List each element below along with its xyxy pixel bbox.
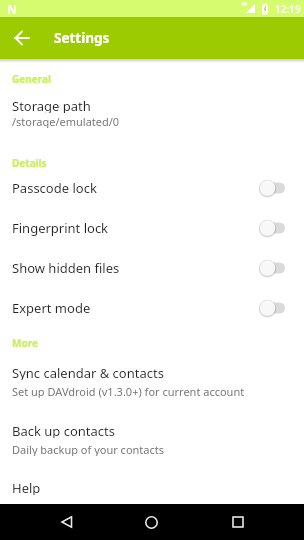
button[interactable]: Sync calendar & contacts xyxy=(0,364,304,398)
button[interactable]: Help xyxy=(0,479,304,495)
staticText: N xyxy=(7,1,17,17)
button[interactable]: Storage path xyxy=(0,97,304,128)
staticText: Fingerprint lock xyxy=(12,219,109,237)
button[interactable]: Back up contacts xyxy=(0,422,304,456)
button[interactable] xyxy=(203,504,304,540)
staticText: Help xyxy=(12,479,41,495)
button[interactable] xyxy=(0,17,44,59)
button[interactable]: Passcode lock xyxy=(0,168,304,208)
staticText: General xyxy=(12,72,51,84)
button[interactable] xyxy=(102,504,203,540)
staticText: Sync calendar & contacts xyxy=(12,364,164,380)
staticText: Storage path xyxy=(12,97,91,113)
staticText: Set up DAVdroid (v1.3.0+) for current ac… xyxy=(12,384,245,398)
staticText: /storage/emulated/0 xyxy=(12,114,120,128)
staticText: Daily backup of your contacts xyxy=(12,442,165,456)
button[interactable]: Show hidden files xyxy=(0,248,304,288)
staticText: Expert mode xyxy=(12,299,91,317)
staticText: Settings xyxy=(54,29,110,47)
staticText: More xyxy=(12,336,38,348)
staticText: 12:19 xyxy=(275,2,301,16)
button[interactable]: Expert mode xyxy=(0,288,304,328)
staticText: Passcode lock xyxy=(12,179,97,197)
staticText: Details xyxy=(12,156,47,168)
staticText: Show hidden files xyxy=(12,259,120,277)
button[interactable] xyxy=(0,504,102,540)
button[interactable]: Fingerprint lock xyxy=(0,208,304,248)
staticText: Back up contacts xyxy=(12,422,115,438)
